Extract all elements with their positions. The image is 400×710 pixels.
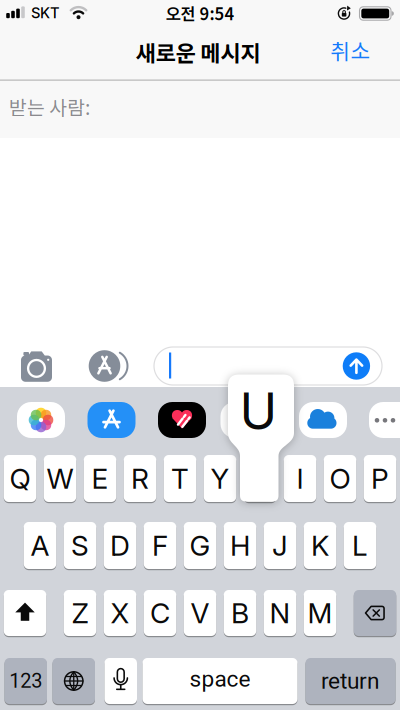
button[interactable]: Next keyboard <box>52 658 95 704</box>
staticText: return <box>321 668 380 694</box>
staticText: C <box>150 596 170 630</box>
button[interactable]: return <box>305 658 395 704</box>
button[interactable]: Y <box>204 455 236 502</box>
staticText: U <box>239 380 277 442</box>
button[interactable]: Photos <box>0 0 400 710</box>
button[interactable]: More apps <box>0 0 400 710</box>
staticText: SKT <box>31 4 60 22</box>
button[interactable]: D <box>104 522 136 569</box>
button[interactable]: Q <box>4 455 36 502</box>
button[interactable]: K <box>304 522 336 569</box>
staticText: E <box>91 462 108 495</box>
button[interactable]: F <box>144 522 176 569</box>
button[interactable]: J <box>264 522 296 569</box>
staticText: R <box>131 462 149 495</box>
staticText: Z <box>71 596 88 630</box>
staticText: S <box>71 529 89 562</box>
button[interactable]: Dictate <box>104 658 137 704</box>
staticText: K <box>311 529 329 562</box>
button[interactable]: I <box>284 455 316 502</box>
staticText: Y <box>210 462 229 495</box>
staticText: V <box>190 596 209 630</box>
button[interactable]: iMessage apps <box>0 0 400 710</box>
staticText: O <box>329 462 350 495</box>
button[interactable]: T <box>164 455 196 502</box>
staticText: L <box>352 529 368 562</box>
staticText: 취소 <box>330 35 370 65</box>
staticText: 123 <box>9 669 42 693</box>
button[interactable]: Send <box>0 0 400 710</box>
button[interactable]: A <box>24 522 56 569</box>
staticText: M <box>307 596 332 630</box>
button[interactable]: U <box>244 455 276 502</box>
staticText: W <box>46 462 73 495</box>
button[interactable]: P <box>364 455 396 502</box>
staticText: Q <box>9 462 30 495</box>
button[interactable]: C <box>144 590 176 636</box>
button[interactable]: H <box>224 522 256 569</box>
button[interactable]: O <box>324 455 356 502</box>
staticText: G <box>189 529 210 562</box>
button[interactable]: V <box>184 590 216 636</box>
staticText: space <box>189 666 250 692</box>
staticText: D <box>110 529 130 562</box>
staticText: P <box>371 462 389 495</box>
staticText: A <box>30 529 49 562</box>
staticText: B <box>231 596 249 630</box>
button[interactable]: B <box>224 590 256 636</box>
button[interactable]: X <box>104 590 136 636</box>
button[interactable]: L <box>344 522 376 569</box>
staticText: H <box>230 529 250 562</box>
button[interactable]: Delete <box>354 590 396 636</box>
button[interactable]: 취소 <box>250 35 370 65</box>
button[interactable]: G <box>184 522 216 569</box>
button[interactable]: N <box>264 590 296 636</box>
staticText: X <box>110 596 129 630</box>
button[interactable]: Camera <box>0 0 400 710</box>
button[interactable]: OneDrive <box>0 0 400 710</box>
staticText: 오전 9:54 <box>165 1 234 25</box>
button[interactable]: App Store <box>0 0 400 710</box>
button[interactable]: W <box>44 455 76 502</box>
button[interactable]: Shift <box>4 590 46 636</box>
button[interactable]: Digital Touch <box>0 0 400 710</box>
button[interactable]: S <box>64 522 96 569</box>
staticText: I <box>296 462 303 495</box>
button[interactable]: R <box>124 455 156 502</box>
button[interactable]: 123 <box>4 658 47 704</box>
staticText: F <box>152 529 168 562</box>
button[interactable]: M <box>304 590 336 636</box>
staticText: N <box>269 596 290 630</box>
staticText: J <box>272 529 288 562</box>
staticText: 새로운 메시지 <box>135 36 260 68</box>
button[interactable]: Z <box>64 590 96 636</box>
button[interactable]: E <box>84 455 116 502</box>
button[interactable]: space <box>142 658 297 704</box>
staticText: T <box>171 462 189 495</box>
staticText: 받는 사람: <box>9 92 90 120</box>
